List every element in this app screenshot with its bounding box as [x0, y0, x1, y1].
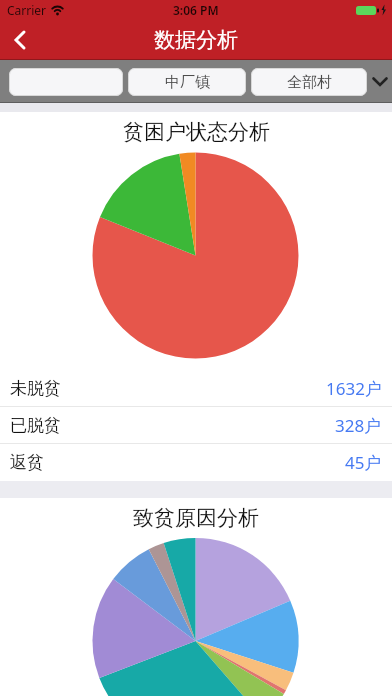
staticText: Carrier — [7, 2, 47, 18]
staticText: 45户 — [345, 451, 382, 474]
button[interactable]: 中厂镇 — [128, 68, 246, 96]
staticText: 数据分析 — [154, 27, 238, 53]
button[interactable] — [9, 68, 123, 96]
button[interactable]: 全部村 — [251, 68, 367, 96]
button[interactable] — [367, 60, 392, 103]
staticText: 已脱贫 — [10, 415, 61, 436]
staticText: 全部村 — [287, 73, 332, 92]
button[interactable]: 返贫 — [0, 444, 392, 481]
staticText: 1632户 — [326, 377, 382, 400]
button[interactable] — [0, 20, 40, 60]
staticText: 返贫 — [10, 452, 44, 473]
staticText: 中厂镇 — [165, 73, 210, 92]
staticText: 贫困户状态分析 — [123, 119, 270, 145]
button[interactable]: 已脱贫 — [0, 407, 392, 444]
staticText: 未脱贫 — [10, 378, 61, 399]
staticText: 致贫原因分析 — [133, 505, 259, 531]
staticText: 3:06 PM — [173, 2, 219, 18]
button[interactable]: 未脱贫 — [0, 370, 392, 407]
staticText: 328户 — [335, 414, 382, 437]
